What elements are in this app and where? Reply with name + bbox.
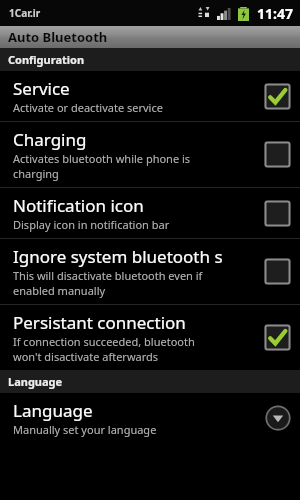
button[interactable]: Language (0, 393, 300, 443)
staticText: Charging (13, 128, 87, 151)
button[interactable]: Enabled checkbox (264, 324, 291, 351)
button[interactable]: Persistant connection (0, 305, 300, 370)
staticText: This will disactivate bluetooth even if (13, 268, 203, 283)
button[interactable]: Service (0, 71, 300, 121)
button[interactable]: Notification icon (0, 188, 300, 238)
staticText: 11:47 (257, 4, 293, 23)
staticText: won't disactivate afterwards (13, 349, 159, 364)
staticText: enabled manually (13, 283, 106, 298)
button[interactable]: Disabled checkbox (264, 258, 291, 285)
staticText: charging (13, 166, 59, 181)
staticText: Language (8, 374, 63, 389)
button[interactable]: Open language list (265, 405, 291, 431)
button[interactable]: Disabled checkbox (264, 141, 291, 168)
staticText: Auto Bluetooth (8, 28, 108, 46)
button[interactable]: Charging (0, 122, 300, 187)
staticText: Activates bluetooth while phone is (13, 151, 191, 166)
staticText: 1Car.ir (9, 6, 41, 20)
staticText: Activate or deactivate service (13, 100, 163, 115)
button[interactable]: Ignore system bluetooth s (0, 239, 300, 304)
staticText: Display icon in notification bar (13, 217, 170, 232)
staticText: Configuration (8, 52, 85, 67)
staticText: Ignore system bluetooth s (13, 245, 223, 268)
staticText: If connection succeeded, bluetooth (13, 334, 195, 349)
button[interactable]: Disabled checkbox (264, 200, 291, 227)
button[interactable]: Enabled checkbox (264, 83, 291, 110)
staticText: Notification icon (13, 194, 144, 217)
staticText: Manually set your language (13, 422, 157, 437)
staticText: Persistant connection (13, 311, 186, 334)
staticText: Language (13, 399, 93, 422)
staticText: Service (13, 77, 70, 100)
